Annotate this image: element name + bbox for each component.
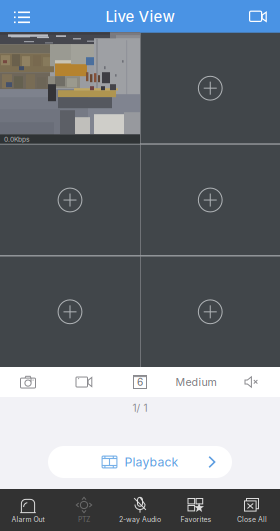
button[interactable]: Add camera	[0, 256, 140, 367]
button[interactable]: PTZ	[56, 489, 112, 531]
button[interactable]: Add camera	[0, 144, 140, 255]
button[interactable]: Menu	[5, 0, 39, 32]
staticText: Alarm Out	[11, 515, 44, 524]
staticText: 0.0Kbps	[4, 135, 30, 143]
staticText: 2-way Audio	[119, 515, 161, 524]
button[interactable]: Snapshot	[0, 367, 56, 397]
button[interactable]: Camera 1 live	[0, 32, 140, 144]
staticText: 6	[137, 376, 143, 388]
button[interactable]: Add device	[241, 0, 275, 32]
staticText: PTZ	[78, 515, 90, 524]
button[interactable]: Add camera	[140, 33, 280, 144]
button[interactable]: Mute	[224, 367, 280, 397]
staticText: Close All	[237, 515, 267, 524]
staticText: Favorites	[180, 515, 211, 524]
staticText: Live View	[105, 7, 174, 26]
button[interactable]: Favorites	[168, 489, 224, 531]
staticText: 1/ 1	[132, 402, 147, 414]
staticText: Playback	[124, 455, 178, 469]
button[interactable]: Record	[56, 367, 112, 397]
button[interactable]: Close All	[224, 489, 280, 531]
button[interactable]: Medium	[168, 367, 224, 397]
button[interactable]: Playback	[48, 446, 232, 478]
button[interactable]: 2-way Audio	[112, 489, 168, 531]
button[interactable]: Layout	[112, 367, 168, 397]
staticText: Medium	[175, 375, 216, 388]
button[interactable]: Add camera	[140, 144, 280, 255]
button[interactable]: Alarm Out	[0, 489, 56, 531]
button[interactable]: Add camera	[140, 256, 280, 367]
